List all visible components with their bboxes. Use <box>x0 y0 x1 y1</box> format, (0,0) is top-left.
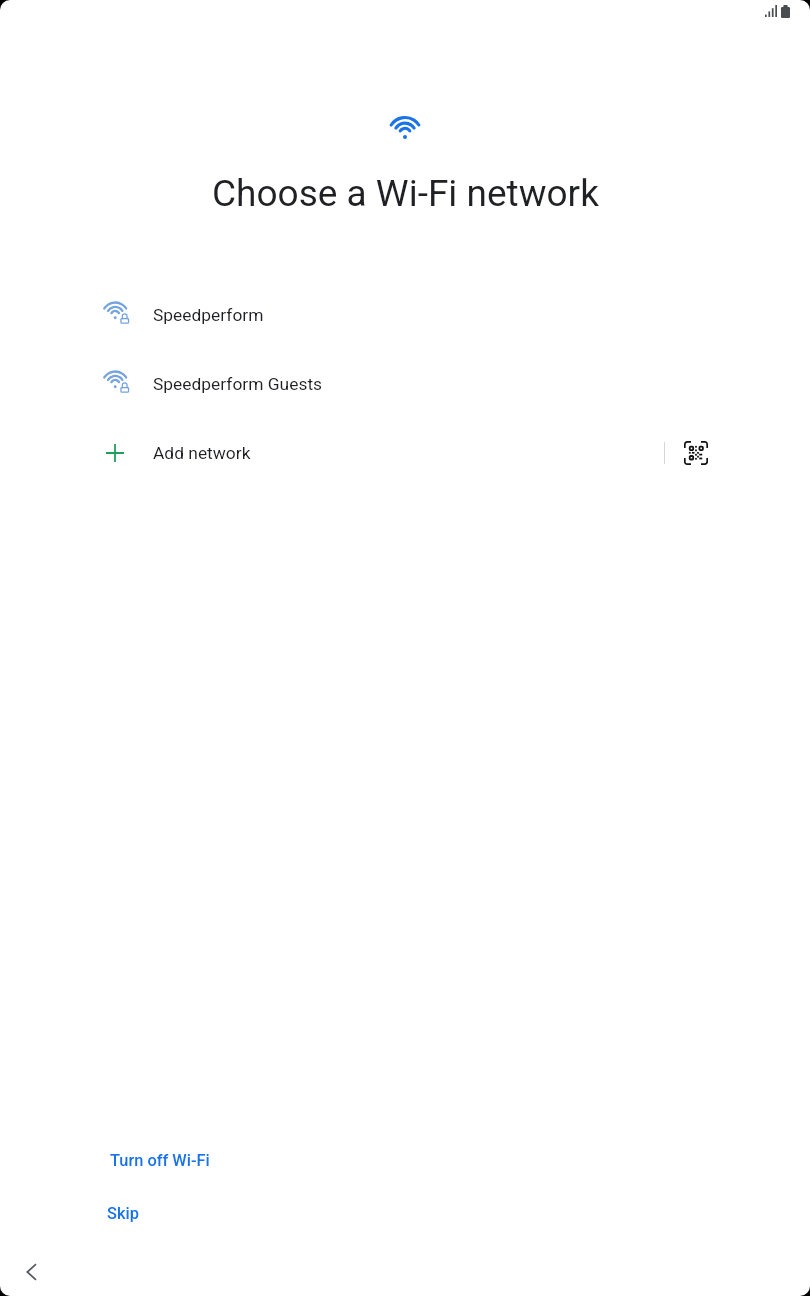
staticText: Choose a Wi-Fi network <box>212 172 599 215</box>
button[interactable]: Skip <box>94 1196 152 1231</box>
button[interactable]: Speedperform Guests <box>0 349 810 418</box>
staticText: Speedperform <box>153 305 264 325</box>
staticText: Turn off Wi-Fi <box>110 1151 210 1170</box>
button[interactable]: Back <box>9 1250 53 1294</box>
button[interactable]: Scan QR code <box>674 431 718 475</box>
staticText: Add network <box>153 443 251 463</box>
staticText: Speedperform Guests <box>153 374 323 394</box>
button[interactable]: Add network <box>0 418 664 487</box>
staticText: Skip <box>107 1204 139 1223</box>
button[interactable]: Turn off Wi-Fi <box>97 1143 223 1178</box>
button[interactable]: Speedperform <box>0 280 810 349</box>
